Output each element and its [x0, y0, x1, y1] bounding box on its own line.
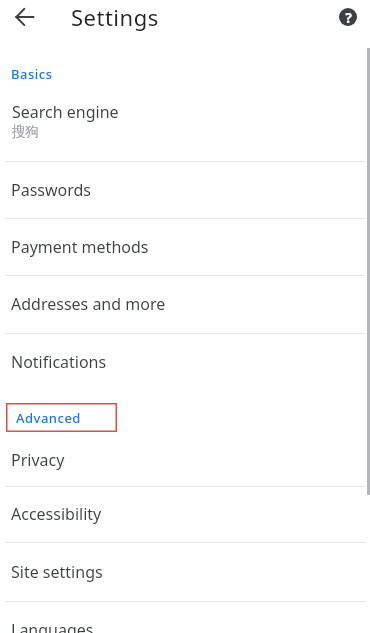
staticText: Advanced [16, 409, 81, 427]
button[interactable]: Site settings [0, 542, 370, 601]
staticText: Settings [71, 2, 159, 31]
staticText: 搜狗 [12, 123, 39, 140]
button[interactable]: Addresses and more [0, 275, 370, 333]
button[interactable]: Back [11, 3, 39, 31]
button[interactable]: Advanced [6, 403, 117, 432]
staticText: Accessibility [11, 503, 102, 525]
staticText: Payment methods [11, 236, 149, 258]
staticText: Passwords [11, 179, 92, 201]
button[interactable]: Passwords [0, 161, 370, 218]
button[interactable]: Help [335, 4, 361, 30]
staticText: Addresses and more [11, 293, 166, 315]
button[interactable]: Privacy [0, 433, 370, 486]
button[interactable]: Notifications [0, 333, 370, 390]
staticText: Notifications [11, 351, 107, 373]
staticText: ? [345, 8, 352, 26]
staticText: Site settings [11, 561, 103, 583]
staticText: Privacy [11, 449, 65, 471]
button[interactable]: Languages [0, 601, 370, 633]
staticText: Basics [11, 65, 53, 83]
button[interactable]: Accessibility [0, 486, 370, 542]
staticText: Search engine [12, 101, 119, 123]
button[interactable]: Search engine [0, 90, 370, 161]
button[interactable]: Payment methods [0, 218, 370, 275]
staticText: Languages [11, 619, 94, 633]
